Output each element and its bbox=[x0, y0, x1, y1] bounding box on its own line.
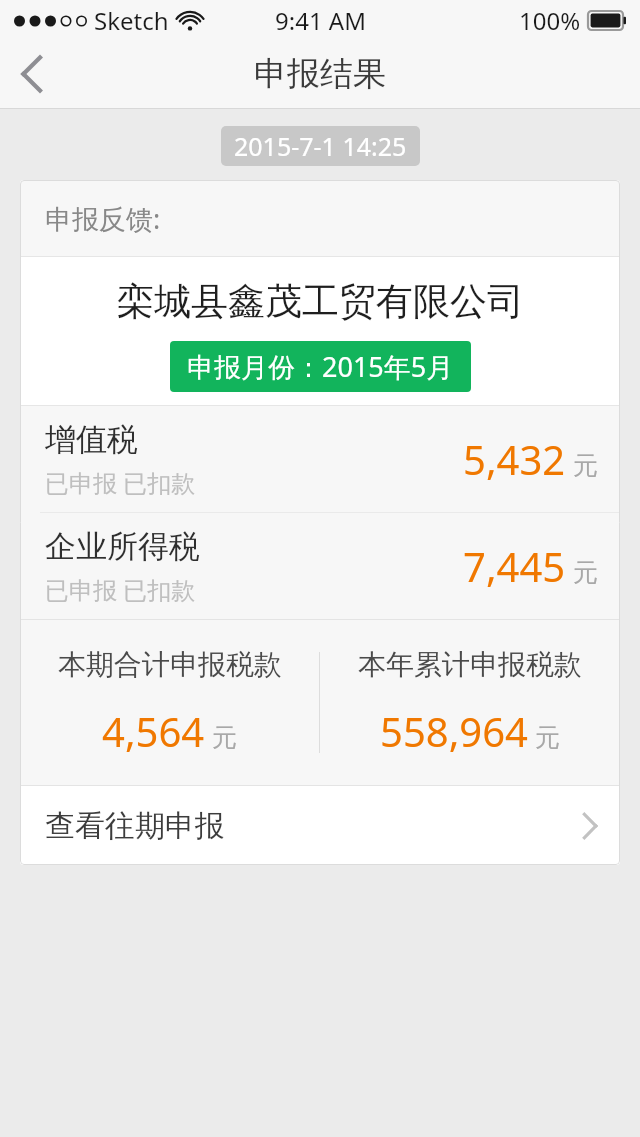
staticText: 元 bbox=[573, 450, 598, 481]
button[interactable]: 增值税 bbox=[20, 406, 620, 512]
staticText: 7,445 bbox=[463, 539, 566, 593]
staticText: Sketch bbox=[94, 4, 169, 37]
staticText: 本期合计申报税款 bbox=[58, 647, 282, 682]
staticText: 9:41 AM bbox=[275, 4, 366, 37]
staticText: 栾城县鑫茂工贸有限公司 bbox=[117, 278, 524, 325]
button[interactable]: 申报月份：2015年5月 bbox=[170, 341, 471, 392]
button[interactable]: 企业所得税 bbox=[20, 513, 620, 619]
button[interactable]: 本年累计申报税款 bbox=[320, 620, 620, 785]
staticText: 查看往期申报 bbox=[45, 807, 225, 845]
staticText: 2015-7-1 14:25 bbox=[234, 129, 407, 163]
staticText: 5,432 bbox=[463, 432, 566, 486]
button[interactable]: 查看往期申报 bbox=[20, 786, 620, 865]
staticText: 申报结果 bbox=[254, 53, 386, 95]
staticText: 558,964 bbox=[380, 704, 528, 758]
staticText: 4,564 bbox=[102, 704, 205, 758]
staticText: 100% bbox=[519, 4, 581, 37]
staticText: 元 bbox=[573, 557, 598, 588]
staticText: 已申报 已扣款 bbox=[45, 573, 196, 606]
button[interactable]: Back bbox=[0, 40, 62, 108]
staticText: 元 bbox=[212, 722, 237, 753]
staticText: 申报反馈: bbox=[45, 200, 161, 237]
staticText: 本年累计申报税款 bbox=[358, 647, 582, 682]
staticText: 申报月份：2015年5月 bbox=[187, 348, 454, 385]
staticText: 元 bbox=[535, 722, 560, 753]
staticText: 已申报 已扣款 bbox=[45, 466, 196, 499]
button[interactable]: 本期合计申报税款 bbox=[20, 620, 319, 785]
staticText: 增值税 bbox=[45, 420, 138, 459]
staticText: 企业所得税 bbox=[45, 527, 200, 566]
